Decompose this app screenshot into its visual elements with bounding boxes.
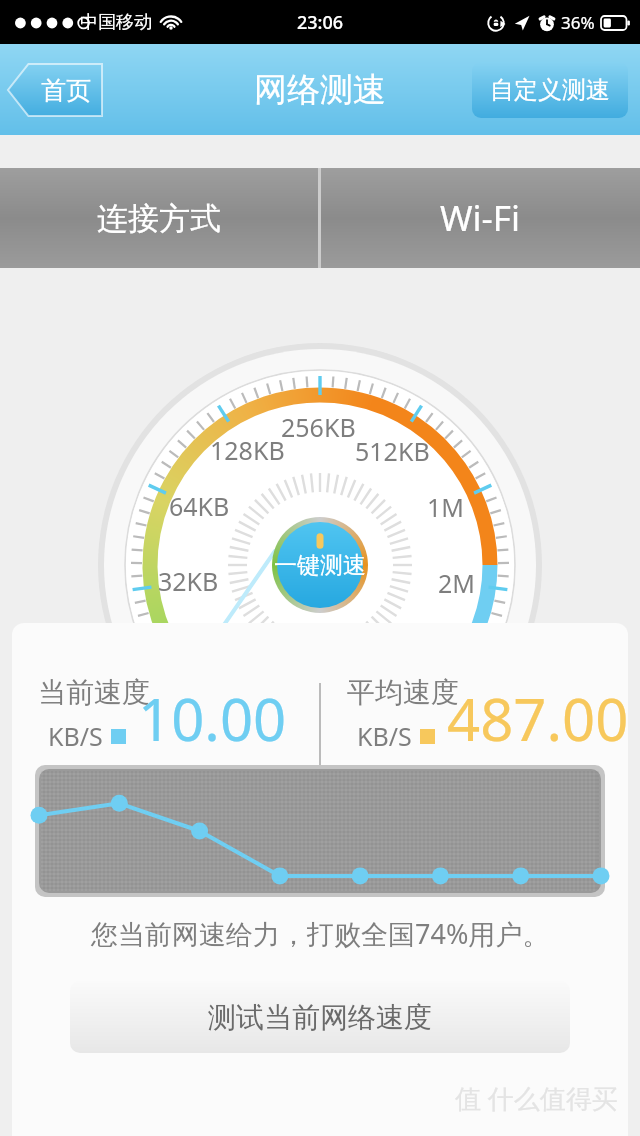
button[interactable]: 自定义测速 — [472, 62, 628, 118]
staticText: 测试当前网络速度 — [208, 1000, 432, 1035]
staticText: 您当前网速给力，打败全国74%用户。 — [91, 915, 550, 952]
staticText: KB/S — [357, 719, 412, 753]
staticText: 2M — [438, 566, 475, 600]
staticText: 512KB — [355, 434, 430, 468]
staticText: 36% — [561, 11, 595, 34]
staticText: 128KB — [210, 433, 285, 467]
staticText: 23:06 — [297, 10, 344, 35]
staticText: 值 什么值得买 — [455, 1080, 618, 1116]
button[interactable]: 测试当前网络速度 — [70, 981, 570, 1053]
staticText: 中国移动 — [80, 11, 152, 34]
button[interactable]: Wi-Fi — [321, 168, 640, 268]
staticText: 256KB — [281, 410, 356, 444]
staticText: Wi-Fi — [440, 194, 521, 242]
staticText: 1M — [427, 490, 464, 524]
staticText: 487.00 — [447, 679, 628, 758]
staticText: 自定义测速 — [490, 75, 610, 105]
staticText: 64KB — [169, 489, 230, 523]
staticText: 当前速度 — [38, 675, 150, 710]
button[interactable]: 首页 — [6, 62, 108, 118]
staticText: 10.00 — [138, 679, 287, 758]
staticText: 平均速度 — [347, 675, 459, 710]
button[interactable]: 一键测速 Start speed test — [272, 517, 368, 613]
staticText: 连接方式 — [97, 199, 221, 238]
button[interactable]: 连接方式 — [0, 168, 318, 268]
staticText: 一键测速 — [274, 551, 366, 580]
staticText: 网络测速 — [254, 69, 386, 111]
staticText: 首页 — [41, 75, 91, 106]
staticText: 32KB — [158, 564, 219, 598]
staticText: KB/S — [48, 719, 103, 753]
